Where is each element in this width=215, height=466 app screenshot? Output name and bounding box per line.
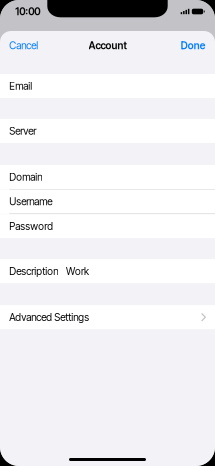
staticText: Username <box>9 196 52 208</box>
staticText: Password <box>9 220 53 232</box>
staticText: Cancel <box>9 39 38 51</box>
staticText: Server <box>9 125 36 137</box>
staticText: Domain <box>9 171 42 183</box>
staticText: Email <box>9 80 32 92</box>
button[interactable]: Done <box>171 31 215 60</box>
staticText: Work <box>66 265 89 277</box>
staticText: Done <box>181 39 206 51</box>
staticText: Description <box>9 265 58 277</box>
button[interactable]: Cancel <box>0 31 48 60</box>
button[interactable]: Advanced Settings <box>0 305 215 329</box>
staticText: Account <box>88 39 126 51</box>
staticText: Advanced Settings <box>9 311 89 323</box>
staticText: 10:00 <box>15 5 40 17</box>
